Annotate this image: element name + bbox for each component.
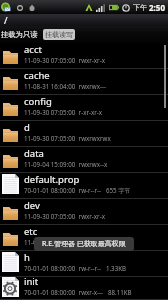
button[interactable]: config — [0, 95, 168, 121]
staticText: init — [24, 275, 39, 288]
staticText: 11-08-31 16:04:00 rwxrwx--- — [24, 82, 106, 90]
staticText: / — [4, 14, 8, 26]
staticText: 挂载读写 — [45, 30, 73, 39]
button[interactable]: 挂载为只读 — [0, 28, 39, 41]
staticText: 70-01-01 08:00:00 rw-r--r-- 655 字节 — [24, 186, 131, 194]
staticText: 11-09-04 15:09:00 rwxrwx--x — [24, 160, 108, 168]
button[interactable]: acct — [0, 43, 168, 69]
staticText: config — [24, 95, 52, 108]
staticText: R.E.管理器 已获取最高权限 — [42, 239, 126, 249]
button[interactable]: dev — [0, 199, 168, 225]
staticText: acct — [24, 43, 42, 56]
staticText: h — [24, 251, 30, 264]
staticText: 2:50 — [149, 2, 165, 13]
button[interactable]: etc — [0, 225, 168, 251]
staticText: 11-09-30 07:05:00 rwxr-xr-x — [24, 56, 105, 64]
staticText: 下午 — [133, 3, 147, 12]
button[interactable]: init — [0, 277, 168, 300]
staticText: default.prop — [24, 173, 80, 186]
staticText: 11-09-30 07:05:00 rwxrwxrwx — [24, 134, 111, 142]
staticText: data — [24, 147, 44, 160]
staticText: 挂载为只读 — [1, 30, 38, 39]
button[interactable]: h — [0, 251, 168, 277]
button[interactable]: data — [0, 147, 168, 173]
staticText: 70-01-01 08:00:00 rwxr-x--- 88.11KB — [24, 288, 132, 296]
button[interactable]: default.prop — [0, 173, 168, 199]
staticText: dev — [24, 199, 40, 212]
staticText: 11-09-30 07:05:00 rwxr-xr-x — [24, 238, 105, 246]
staticText: d — [24, 121, 30, 134]
button[interactable]: d — [0, 121, 168, 147]
button[interactable]: 挂载读写 — [43, 29, 75, 40]
staticText: 11-09-30 07:05:00 rwxr-xr-x — [24, 212, 105, 220]
staticText: 11-09-30 07:05:00 r-xr-xr-x — [24, 108, 103, 116]
button[interactable]: cache — [0, 69, 168, 95]
staticText: 70-01-01 08:00:00 rw-r--r-- 1.33KB — [24, 264, 127, 272]
staticText: etc — [24, 225, 38, 238]
staticText: cache — [24, 69, 50, 82]
